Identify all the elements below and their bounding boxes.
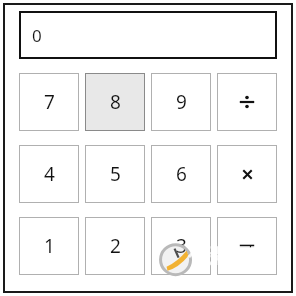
staticText: 1 [44,233,55,259]
staticText: 3 [176,233,187,259]
button[interactable]: 0 [19,11,277,59]
button[interactable]: 3 [151,217,211,275]
button[interactable]: − [217,217,277,275]
staticText: 6 [176,161,187,187]
button[interactable]: ÷ [217,73,277,131]
staticText: 7 [44,89,55,115]
button[interactable]: 5 [85,145,145,203]
staticText: 9 [176,89,187,115]
staticText: 4 [44,161,55,187]
button[interactable]: × [217,145,277,203]
button[interactable]: 4 [19,145,79,203]
staticText: 2 [110,233,121,259]
staticText: 8 [110,89,121,115]
button[interactable]: 8 [85,73,145,131]
staticText: 0 [32,24,42,47]
staticText: 5 [110,161,121,187]
button[interactable]: 6 [151,145,211,203]
button[interactable]: 2 [85,217,145,275]
button[interactable]: 1 [19,217,79,275]
button[interactable]: 7 [19,73,79,131]
button[interactable]: 9 [151,73,211,131]
staticText: 创新互联 [188,243,272,269]
